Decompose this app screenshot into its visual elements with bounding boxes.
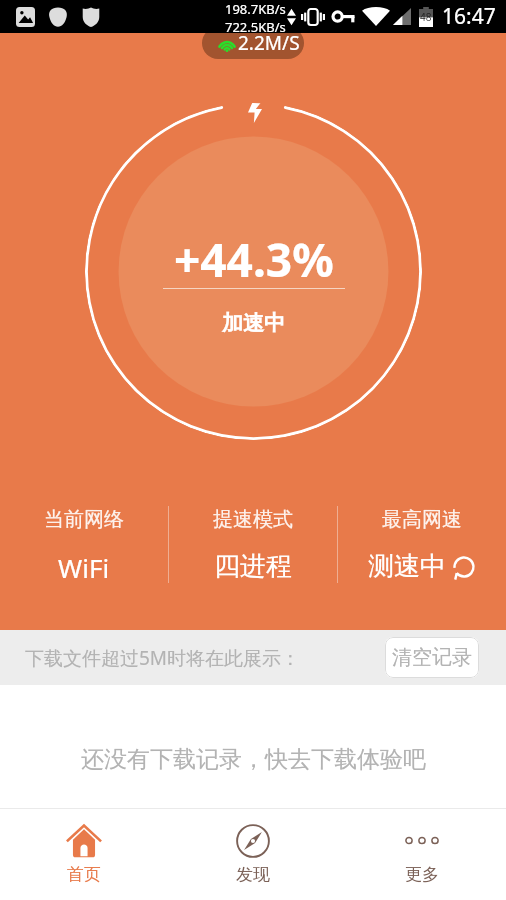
staticText: 2.2M/S <box>238 30 300 56</box>
button[interactable]: 更多 <box>337 809 506 900</box>
staticText: 722.5KB/s <box>225 18 286 33</box>
staticText: 当前网络 <box>44 507 124 532</box>
staticText: +44.3% <box>174 228 334 291</box>
staticText: 最高网速 <box>382 507 462 532</box>
staticText: 四进程 <box>214 550 292 583</box>
button[interactable]: Network speed <box>202 27 304 59</box>
staticText: 首页 <box>67 864 101 885</box>
staticText: 16:47 <box>442 2 496 31</box>
staticText: WiFi <box>58 550 110 585</box>
button[interactable]: 当前网络 <box>0 497 168 597</box>
staticText: 提速模式 <box>213 507 293 532</box>
staticText: 更多 <box>405 864 439 885</box>
staticText: 198.7KB/s <box>225 0 286 18</box>
staticText: 发现 <box>236 864 270 885</box>
staticText: 下载文件超过5M时将在此展示： <box>25 645 301 671</box>
staticText: 清空记录 <box>392 645 472 670</box>
button[interactable]: 清空记录 <box>385 637 479 678</box>
staticText: 测速中 <box>368 550 446 583</box>
button[interactable]: 提速模式 <box>169 497 337 597</box>
staticText: 48 <box>420 10 432 24</box>
button[interactable]: 最高网速 <box>338 497 506 597</box>
button[interactable]: 首页 <box>0 809 168 900</box>
staticText: 还没有下载记录，快去下载体验吧 <box>81 745 426 774</box>
staticText: 加速中 <box>222 310 285 336</box>
button[interactable]: 发现 <box>168 809 337 900</box>
button[interactable]: Boost speed <box>85 103 422 440</box>
